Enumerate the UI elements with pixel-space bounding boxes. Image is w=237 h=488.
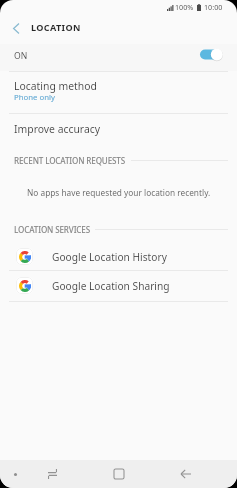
staticText: LOCATION [31,21,81,33]
button[interactable]: Navigate up [2,14,30,42]
staticText: 10:00 [204,2,223,12]
button[interactable]: Google Location History [0,242,237,271]
staticText: Improve accuracy [14,122,101,136]
staticText: RECENT LOCATION REQUESTS [14,155,126,166]
staticText: 100% [175,2,194,12]
button[interactable]: ON [0,44,237,71]
staticText: Google Location History [52,250,167,264]
button[interactable]: Navigation bar settings [6,460,25,488]
button[interactable]: Locating method [0,72,237,113]
staticText: Phone only [14,92,56,103]
button[interactable]: Google Location Sharing [0,271,237,300]
button[interactable]: Back [171,460,200,488]
staticText: Google Location Sharing [52,279,170,293]
staticText: No apps have requested your location rec… [27,187,211,198]
button[interactable]: Improve accuracy [0,114,237,150]
button[interactable]: Recents [38,460,67,488]
button[interactable]: Home [104,460,133,488]
staticText: LOCATION SERVICES [14,224,90,235]
staticText: Locating method [14,79,97,93]
staticText: ON [14,50,28,62]
